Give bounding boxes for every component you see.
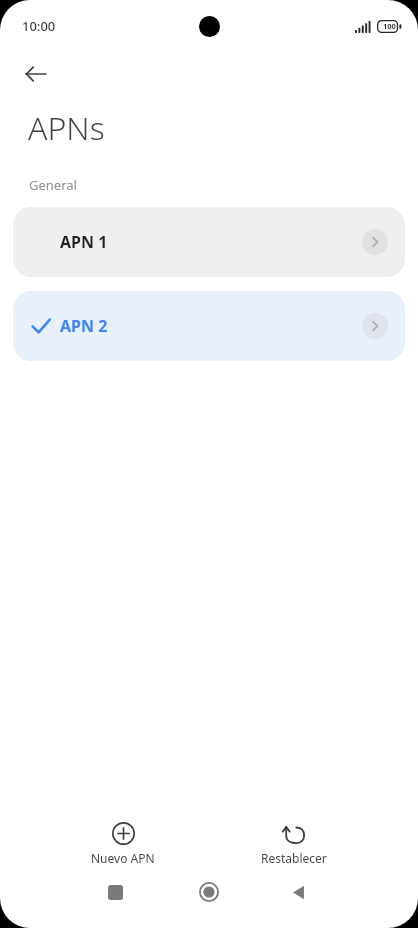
staticText: 100 xyxy=(383,21,396,31)
button[interactable]: Back xyxy=(274,868,322,916)
staticText: 10:00 xyxy=(22,17,56,35)
button[interactable]: Back xyxy=(12,50,60,98)
staticText: APN 2 xyxy=(60,315,108,337)
button[interactable]: Recents xyxy=(91,868,139,916)
staticText: APN 1 xyxy=(60,231,108,253)
button[interactable]: Restablecer xyxy=(245,818,343,870)
button[interactable]: Home xyxy=(185,868,233,916)
staticText: Restablecer xyxy=(261,850,327,866)
staticText: APNs xyxy=(28,106,105,150)
button[interactable]: Nuevo APN xyxy=(75,818,171,870)
staticText: Nuevo APN xyxy=(91,850,155,866)
button[interactable]: APN 1 xyxy=(13,207,405,277)
staticText: General xyxy=(29,176,77,194)
button[interactable]: APN 2 xyxy=(13,291,405,361)
